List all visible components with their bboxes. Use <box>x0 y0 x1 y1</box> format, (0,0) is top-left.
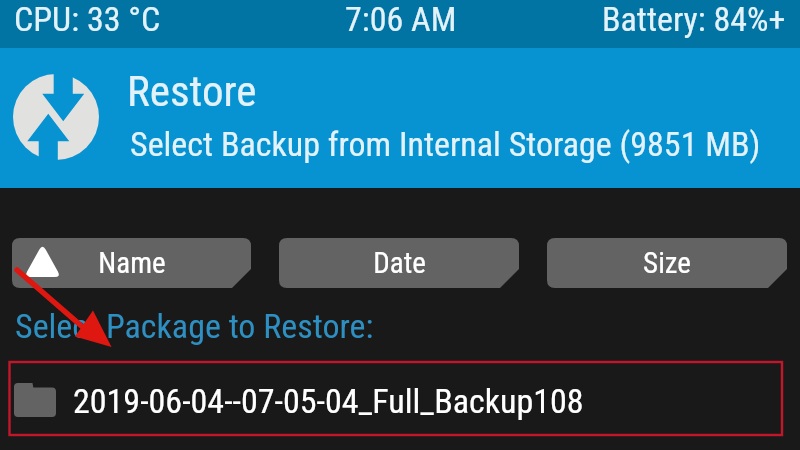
staticText: CPU: 33 °C <box>14 0 161 39</box>
staticText: Date <box>373 246 426 280</box>
staticText: Select Package to Restore: <box>15 306 374 346</box>
button[interactable]: Folder <box>0 363 800 437</box>
staticText: Select Backup from Internal Storage (985… <box>130 124 761 164</box>
button[interactable]: Size <box>547 238 787 288</box>
staticText: 2019-06-04--07-05-04_Full_Backup108 <box>73 381 584 421</box>
staticText: Name <box>98 246 166 280</box>
other: Folder <box>14 383 56 417</box>
button[interactable]: Date <box>279 238 519 288</box>
staticText: Battery: 84%+ <box>602 0 786 39</box>
button[interactable]: Name <box>12 238 251 288</box>
staticText: Restore <box>127 66 257 116</box>
staticText: 7:06 AM <box>345 0 457 39</box>
staticText: Size <box>643 246 691 280</box>
